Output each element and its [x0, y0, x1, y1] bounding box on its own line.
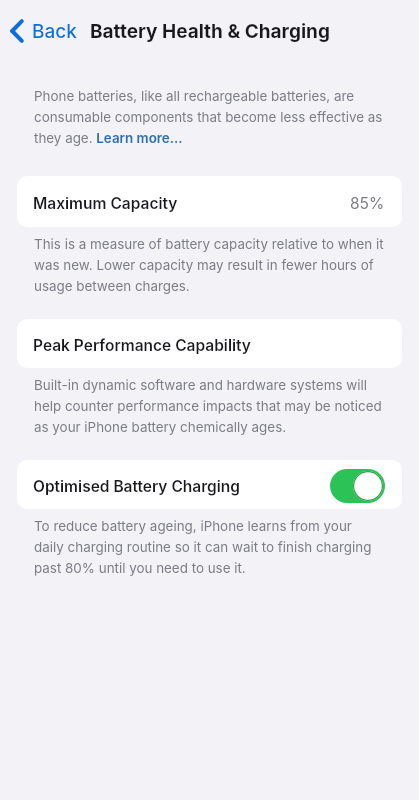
- staticText: This is a measure of battery capacity re…: [34, 232, 384, 295]
- staticText: Built-in dynamic software and hardware s…: [34, 373, 382, 436]
- staticText: Phone batteries, like all rechargeable b…: [34, 84, 383, 147]
- button[interactable]: Peak Performance Capability: [17, 319, 402, 368]
- staticText: Peak Performance Capability: [33, 336, 251, 355]
- button[interactable]: Optimised Battery Charging toggle, on: [330, 469, 385, 503]
- button[interactable]: Back: [4, 14, 85, 48]
- button[interactable]: Maximum Capacity: [17, 176, 402, 227]
- button[interactable]: Optimised Battery Charging: [17, 460, 402, 509]
- staticText: Back: [32, 20, 77, 43]
- staticText: To reduce battery ageing, iPhone learns …: [34, 514, 372, 577]
- staticText: Battery Health & Charging: [90, 20, 330, 43]
- staticText: 85%: [350, 194, 385, 213]
- staticText: Maximum Capacity: [33, 194, 178, 213]
- staticText: Optimised Battery Charging: [33, 477, 240, 496]
